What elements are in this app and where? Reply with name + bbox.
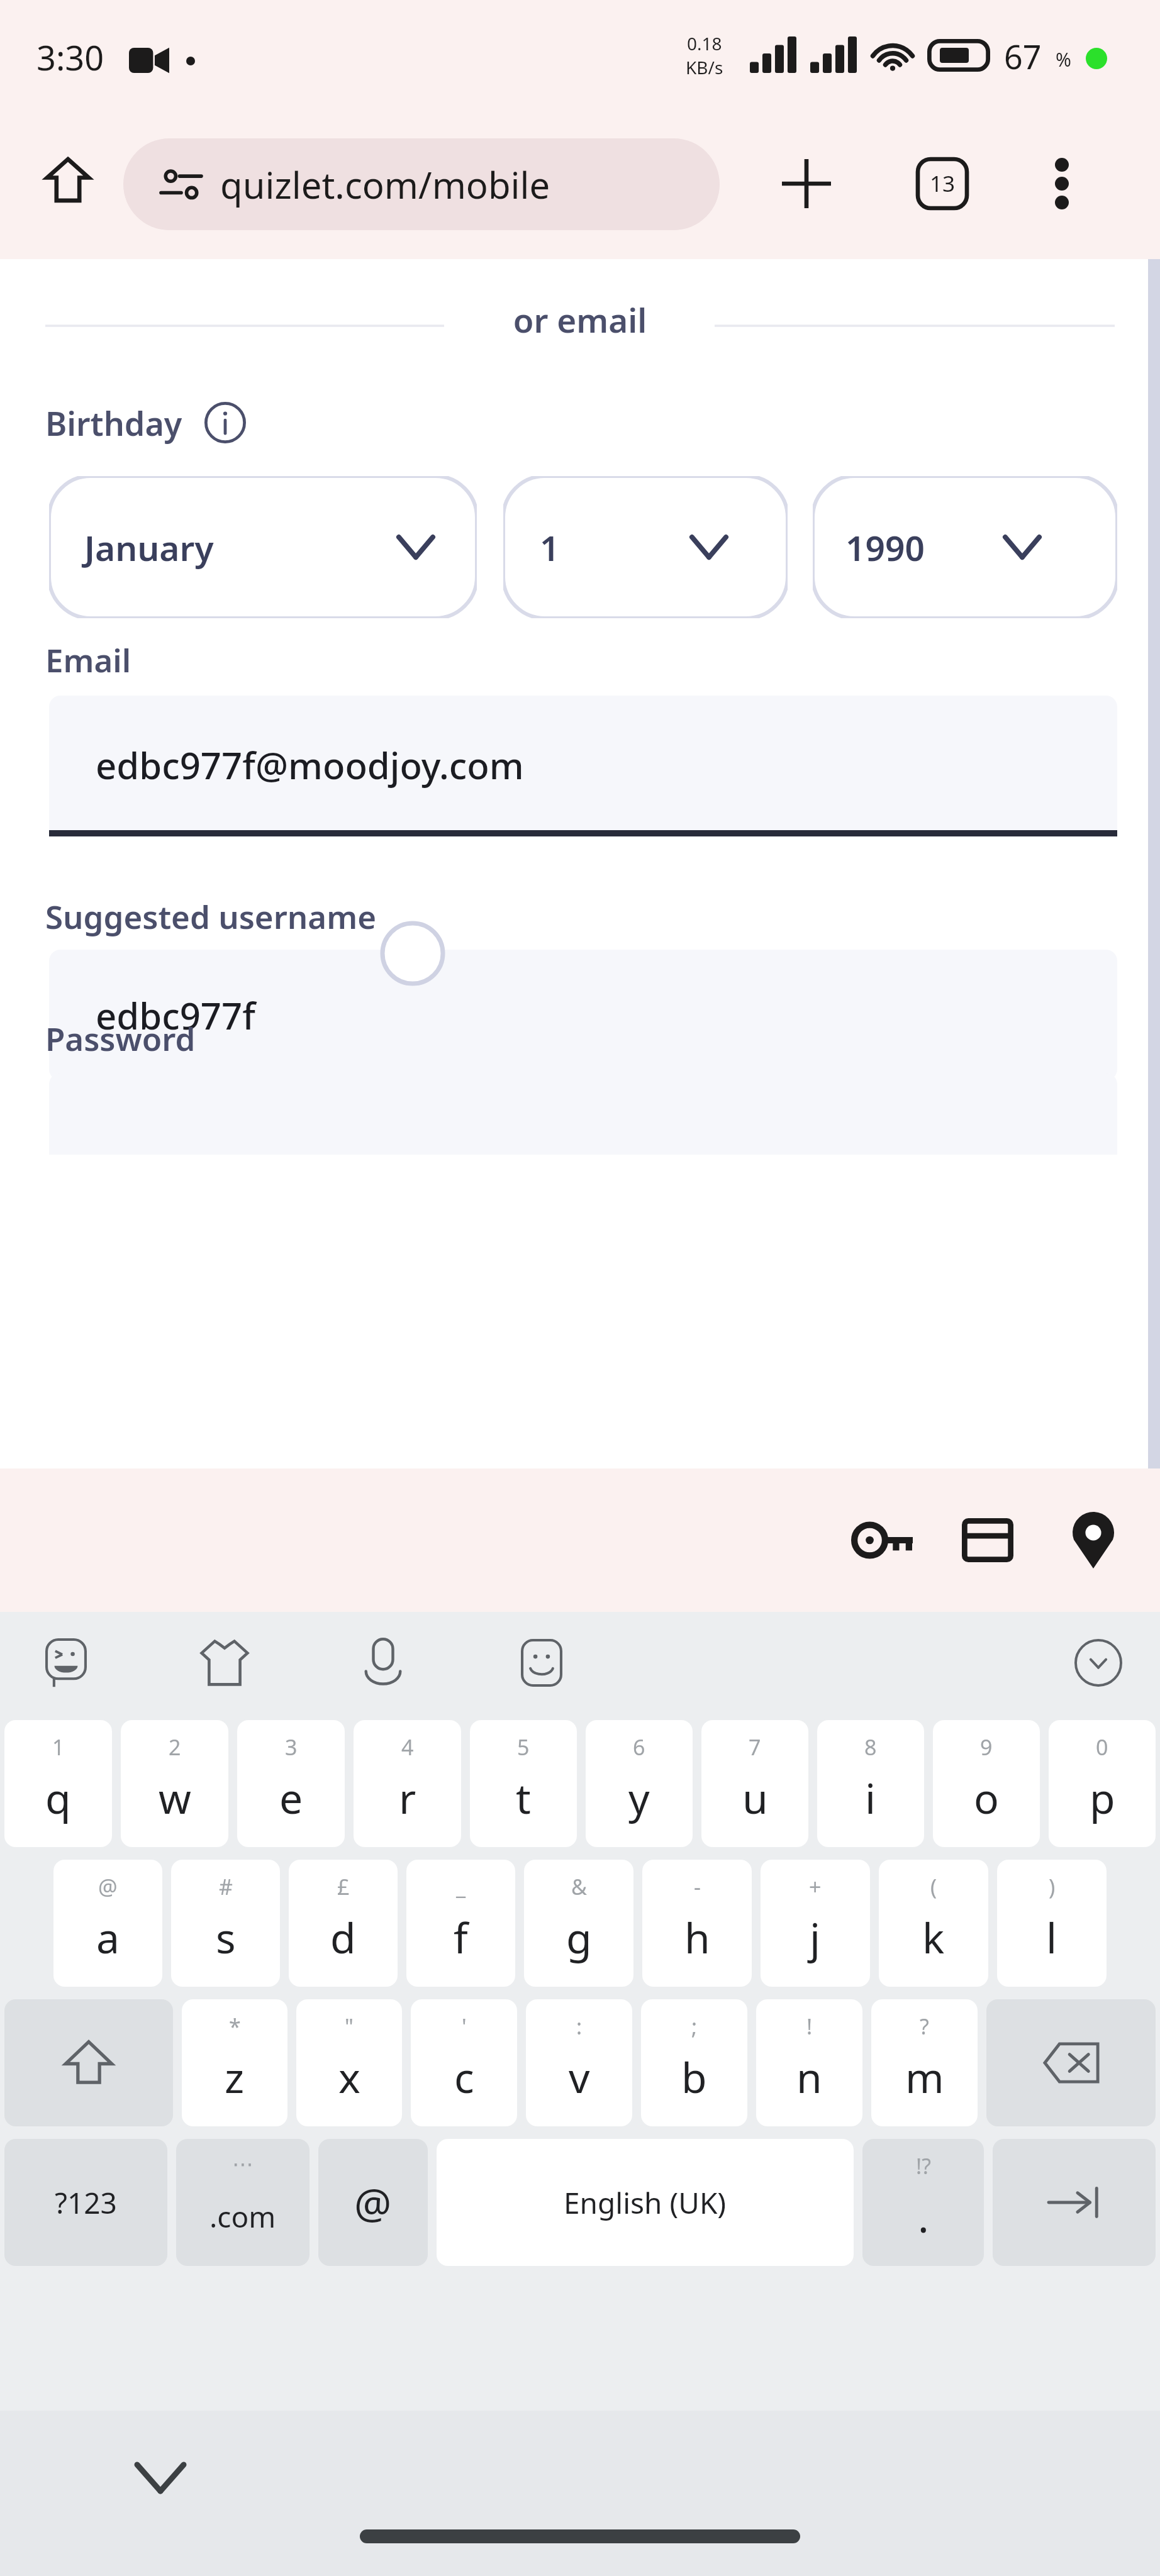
button[interactable]: - bbox=[642, 1860, 752, 1987]
staticText: 5 bbox=[517, 1733, 530, 1762]
button[interactable]: 9 bbox=[933, 1720, 1040, 1847]
button[interactable]: £ bbox=[289, 1860, 398, 1987]
staticText: 0 bbox=[1096, 1733, 1108, 1762]
button[interactable]: Addresses bbox=[1040, 1487, 1146, 1593]
button[interactable]: ) bbox=[997, 1860, 1107, 1987]
button[interactable]: ?123 bbox=[4, 2139, 167, 2266]
button[interactable]: edbc977f@moodjoy.com bbox=[49, 696, 1117, 834]
button[interactable]: Birthday info bbox=[201, 399, 249, 447]
button[interactable]: ( bbox=[879, 1860, 988, 1987]
button[interactable]: English (UK) bbox=[437, 2139, 854, 2266]
staticText: v bbox=[569, 2048, 590, 2105]
button[interactable]: Shift bbox=[4, 1999, 173, 2126]
button[interactable]: + bbox=[761, 1860, 870, 1987]
staticText: o bbox=[974, 1769, 999, 1826]
button[interactable]: 1 bbox=[503, 476, 788, 618]
staticText: quizlet.com/mobile bbox=[220, 160, 550, 209]
staticText: z bbox=[225, 2048, 245, 2105]
button[interactable]: edbc977f bbox=[49, 950, 1117, 1080]
staticText: !? bbox=[916, 2151, 931, 2180]
staticText: u bbox=[742, 1769, 768, 1826]
button[interactable]: 3 bbox=[237, 1720, 345, 1847]
button[interactable]: Emoji bbox=[29, 1626, 103, 1700]
button[interactable]: Home bbox=[28, 140, 108, 220]
staticText: English (UK) bbox=[564, 2183, 727, 2223]
button[interactable]: Passwords bbox=[829, 1487, 935, 1593]
button[interactable]: Payment methods bbox=[935, 1487, 1040, 1593]
button[interactable]: Enter bbox=[993, 2139, 1156, 2266]
staticText: ; bbox=[691, 2012, 698, 2041]
button[interactable]: 6 bbox=[586, 1720, 693, 1847]
staticText: f bbox=[454, 1909, 468, 1965]
staticText: 8 bbox=[864, 1733, 877, 1762]
staticText: 0.18 bbox=[687, 31, 722, 55]
staticText: 9 bbox=[980, 1733, 993, 1762]
button[interactable]: 0 bbox=[1049, 1720, 1156, 1847]
staticText: k bbox=[922, 1909, 945, 1965]
staticText: edbc977f bbox=[96, 991, 255, 1040]
button[interactable]: 4 bbox=[354, 1720, 461, 1847]
staticText: .com bbox=[209, 2197, 276, 2236]
button[interactable]: ; bbox=[641, 1999, 747, 2126]
button[interactable]: ? bbox=[871, 1999, 978, 2126]
staticText: . bbox=[918, 2188, 929, 2245]
staticText: 4 bbox=[401, 1733, 414, 1762]
button[interactable]: Stickers bbox=[187, 1626, 262, 1700]
button[interactable]: * bbox=[182, 1999, 287, 2126]
button[interactable]: & bbox=[524, 1860, 633, 1987]
button[interactable]: !? bbox=[862, 2139, 984, 2266]
button[interactable]: GIFs bbox=[505, 1626, 579, 1700]
staticText: 13 bbox=[930, 169, 956, 199]
staticText: m bbox=[905, 2048, 944, 2105]
button[interactable]: Backspace bbox=[986, 1999, 1156, 2126]
button[interactable]: @ bbox=[53, 1860, 162, 1987]
button[interactable]: _ bbox=[406, 1860, 515, 1987]
button[interactable]: ' bbox=[411, 1999, 517, 2126]
button[interactable]: 8 bbox=[817, 1720, 924, 1847]
staticText: Password bbox=[45, 1016, 196, 1060]
button[interactable]: Hide keyboard bbox=[120, 2437, 201, 2519]
staticText: i bbox=[865, 1769, 876, 1826]
staticText: a bbox=[96, 1909, 120, 1965]
button[interactable]: quizlet.com/mobile bbox=[123, 138, 720, 230]
button[interactable]: 1990 bbox=[813, 476, 1117, 618]
button[interactable]: More options bbox=[1018, 140, 1106, 228]
button[interactable]: " bbox=[296, 1999, 402, 2126]
button[interactable]: : bbox=[526, 1999, 632, 2126]
button[interactable]: Voice input bbox=[346, 1626, 420, 1700]
button[interactable]: Tabs, 13 open bbox=[898, 140, 986, 228]
staticText: e bbox=[279, 1769, 303, 1826]
button[interactable]: ! bbox=[756, 1999, 862, 2126]
button[interactable]: @ bbox=[318, 2139, 428, 2266]
button[interactable]: January bbox=[49, 476, 477, 618]
staticText: Suggested username bbox=[45, 894, 376, 938]
staticText: - bbox=[694, 1872, 701, 1901]
staticText: p bbox=[1090, 1769, 1115, 1826]
staticText: ' bbox=[462, 2012, 467, 2041]
staticText: g bbox=[566, 1909, 592, 1965]
staticText: 3 bbox=[285, 1733, 298, 1762]
button[interactable]: 7 bbox=[701, 1720, 808, 1847]
staticText: n bbox=[796, 2048, 822, 2105]
staticText: d bbox=[330, 1909, 356, 1965]
button[interactable]: 2 bbox=[121, 1720, 228, 1847]
staticText: y bbox=[628, 1769, 650, 1826]
button[interactable]: # bbox=[171, 1860, 280, 1987]
staticText: q bbox=[45, 1769, 71, 1826]
staticText: : bbox=[576, 2012, 583, 2041]
staticText: Email bbox=[45, 638, 131, 681]
button[interactable]: 1 bbox=[4, 1720, 112, 1847]
staticText: h bbox=[684, 1909, 710, 1965]
staticText: 1 bbox=[540, 524, 560, 571]
staticText: KB/s bbox=[686, 55, 723, 79]
staticText: or email bbox=[0, 297, 1160, 342]
button[interactable]: Collapse toolbar bbox=[1061, 1625, 1136, 1701]
button[interactable]: 5 bbox=[470, 1720, 577, 1847]
staticText: * bbox=[229, 2012, 241, 2041]
staticText: # bbox=[219, 1872, 233, 1901]
button[interactable]: ⋯ bbox=[176, 2139, 310, 2266]
staticText: w bbox=[159, 1769, 191, 1826]
button[interactable]: New tab bbox=[762, 140, 850, 228]
staticText: b bbox=[681, 2048, 707, 2105]
